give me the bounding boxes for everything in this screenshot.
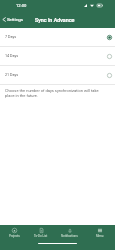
button[interactable]: 7 Days bbox=[0, 28, 115, 46]
staticText: To-Do List bbox=[34, 234, 48, 237]
staticText: Sync In Advance bbox=[35, 17, 75, 23]
button[interactable]: To-Do List bbox=[29, 228, 53, 237]
staticText: Menu bbox=[96, 234, 104, 237]
staticText: 14 Days bbox=[5, 54, 19, 58]
staticText: 7 Days bbox=[5, 35, 17, 39]
button[interactable]: Back bbox=[0, 17, 26, 22]
button[interactable]: Menu bbox=[86, 228, 114, 237]
button[interactable]: Notifications bbox=[53, 228, 86, 237]
staticText: 12:00 bbox=[16, 3, 27, 8]
button[interactable]: 14 Days bbox=[0, 47, 115, 65]
staticText: Settings bbox=[7, 17, 24, 22]
button[interactable]: Projects bbox=[0, 228, 29, 237]
staticText: Choose the number of days synchronizatio… bbox=[5, 88, 106, 98]
button[interactable]: 21 Days bbox=[0, 66, 115, 84]
staticText: 21 Days bbox=[5, 73, 19, 77]
staticText: Projects bbox=[9, 234, 20, 237]
other: Back bbox=[2, 17, 6, 22]
staticText: Notifications bbox=[61, 234, 78, 237]
